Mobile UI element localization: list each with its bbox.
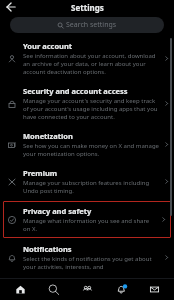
button[interactable]: Back bbox=[4, 0, 18, 14]
button[interactable]: Communities bbox=[73, 279, 101, 300]
staticText: Your account bbox=[23, 41, 73, 51]
button[interactable]: Messages bbox=[140, 279, 168, 300]
button[interactable]: Premium bbox=[0, 163, 174, 200]
button[interactable]: Home bbox=[6, 279, 34, 300]
button[interactable]: Notifications bbox=[0, 239, 174, 276]
button[interactable]: Your account bbox=[0, 36, 174, 81]
staticText: See how you can make money on X and mana… bbox=[23, 142, 161, 158]
staticText: See information about your account, down… bbox=[23, 52, 161, 76]
staticText: Manage your subscription features includ… bbox=[23, 179, 161, 195]
button[interactable]: Security and account access bbox=[0, 81, 174, 126]
staticText: Select the kinds of notifications you ge… bbox=[23, 255, 161, 271]
button[interactable]: Search settings bbox=[10, 17, 164, 33]
staticText: Search settings bbox=[66, 20, 117, 30]
staticText: Settings bbox=[71, 2, 104, 13]
staticText: Monetization bbox=[23, 131, 73, 141]
button[interactable]: Monetization bbox=[0, 126, 174, 163]
button[interactable]: Search bbox=[39, 279, 67, 300]
staticText: Manage what information you see and shar… bbox=[23, 217, 158, 233]
button[interactable]: Privacy and safety bbox=[3, 201, 171, 238]
button[interactable]: Notifications bbox=[107, 279, 135, 300]
staticText: Manage your account's security and keep … bbox=[23, 97, 161, 121]
staticText: Security and account access bbox=[23, 86, 128, 96]
staticText: Notifications bbox=[23, 244, 72, 254]
staticText: Privacy and safety bbox=[23, 206, 92, 216]
staticText: Premium bbox=[23, 168, 58, 178]
